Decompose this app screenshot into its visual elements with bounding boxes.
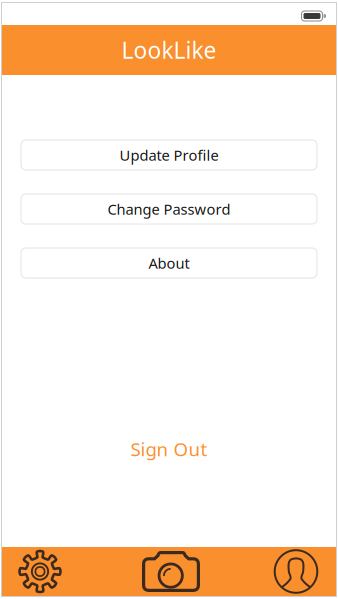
button[interactable]: Change Password: [21, 194, 317, 224]
staticText: Sign Out: [130, 437, 207, 461]
staticText: About: [148, 253, 189, 273]
button[interactable]: Settings: [2, 546, 78, 597]
staticText: Update Profile: [119, 145, 218, 165]
button[interactable]: Camera: [133, 546, 209, 597]
button[interactable]: Profile: [258, 546, 334, 597]
button[interactable]: About: [21, 248, 317, 278]
staticText: LookLike: [121, 35, 216, 65]
staticText: Change Password: [107, 199, 230, 219]
button[interactable]: Update Profile: [21, 140, 317, 170]
button[interactable]: Sign Out: [21, 436, 317, 462]
